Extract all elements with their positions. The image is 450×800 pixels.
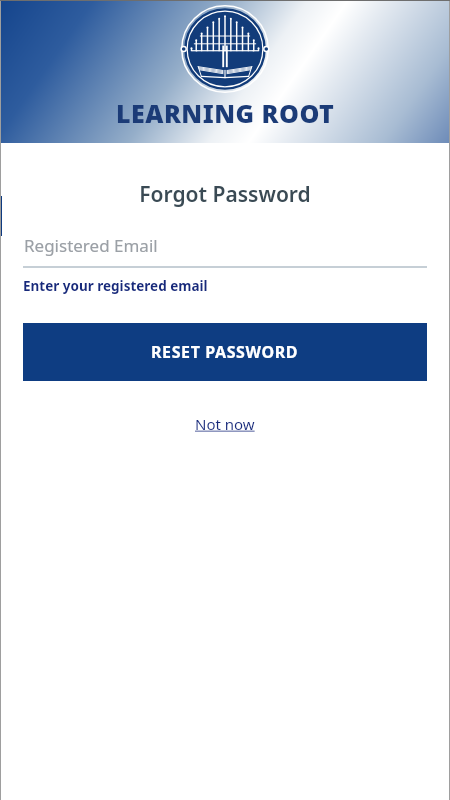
staticText: RESET PASSWORD: [151, 341, 299, 363]
staticText: Registered Email: [24, 234, 158, 257]
button[interactable]: RESET PASSWORD: [23, 323, 427, 381]
button[interactable]: Registered Email: [24, 234, 426, 257]
staticText: Enter your registered email: [23, 277, 208, 295]
staticText: Not now: [195, 414, 255, 434]
staticText: Forgot Password: [0, 180, 450, 209]
staticText: LEARNING ROOT: [116, 96, 335, 130]
button[interactable]: Not now: [187, 411, 263, 437]
